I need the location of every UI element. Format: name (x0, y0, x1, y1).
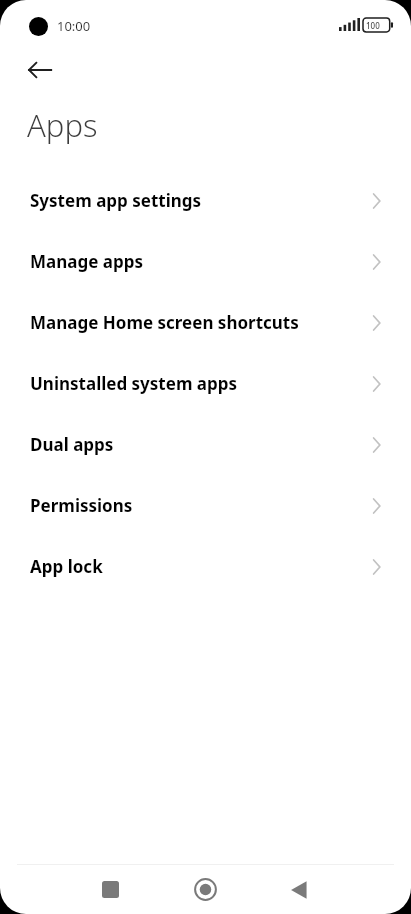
button[interactable]: Permissions (0, 475, 411, 536)
button[interactable]: Back (275, 865, 323, 914)
button[interactable]: Back (14, 52, 66, 88)
staticText: 10:00 (57, 17, 91, 35)
staticText: Uninstalled system apps (30, 372, 238, 395)
button[interactable]: Uninstalled system apps (0, 353, 411, 414)
button[interactable]: System app settings (0, 170, 411, 231)
staticText: System app settings (30, 189, 202, 212)
button[interactable]: Manage Home screen shortcuts (0, 292, 411, 353)
staticText: Manage Home screen shortcuts (30, 311, 299, 334)
button[interactable]: Manage apps (0, 231, 411, 292)
staticText: App lock (30, 555, 103, 578)
staticText: Apps (27, 104, 98, 146)
button[interactable]: Recent apps (86, 865, 134, 914)
button[interactable]: Home (181, 865, 229, 914)
staticText: Dual apps (30, 433, 114, 456)
staticText: 100 (366, 20, 380, 31)
staticText: Manage apps (30, 250, 143, 273)
button[interactable]: Dual apps (0, 414, 411, 475)
staticText: Permissions (30, 494, 133, 517)
button[interactable]: App lock (0, 536, 411, 597)
